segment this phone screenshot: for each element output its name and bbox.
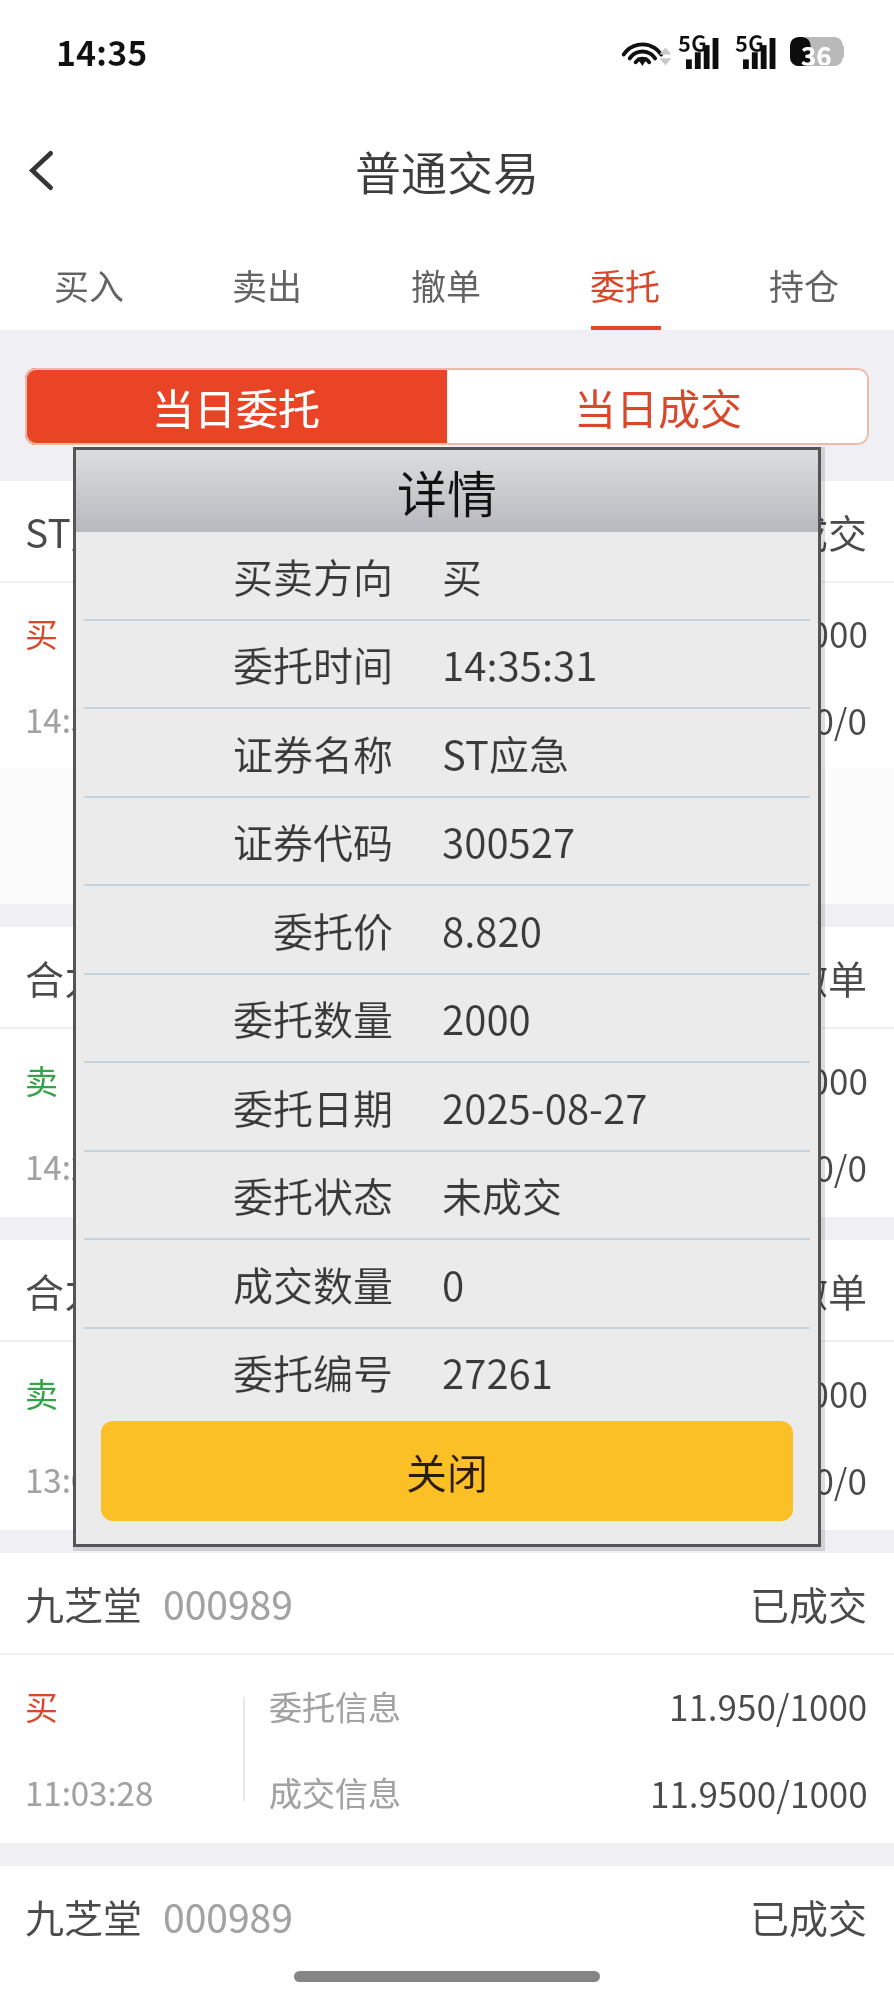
staticText: 撤单 — [411, 259, 482, 310]
staticText: 5G — [678, 26, 707, 58]
button[interactable]: 合力泰 — [0, 1240, 894, 1530]
button[interactable]: 九芝堂 — [0, 1866, 894, 2000]
staticText: 委托信息 — [269, 1369, 401, 1417]
staticText: 卖出 — [232, 259, 303, 310]
staticText: 委托数量 — [233, 989, 393, 1047]
button[interactable]: 撤单 — [357, 232, 536, 330]
staticText: 0.0000/0 — [727, 1141, 868, 1192]
staticText: 委托 — [590, 259, 661, 310]
staticText: 已成交 — [750, 1888, 868, 1944]
staticText: 成交信息 — [269, 695, 401, 743]
button[interactable]: 关闭 — [101, 1421, 793, 1521]
staticText: 已成交 — [750, 1575, 868, 1631]
staticText: 0.0000/0 — [727, 1454, 868, 1505]
staticText: 未成交 — [750, 503, 868, 559]
button[interactable]: 卖出 — [178, 232, 357, 330]
staticText: 卖 — [25, 1369, 58, 1417]
staticText: 成交信息 — [269, 1768, 401, 1816]
staticText: 14:35 — [56, 27, 148, 76]
staticText: 2.650/1000 — [689, 1367, 868, 1418]
staticText: 2000 — [442, 989, 531, 1047]
staticText: 14:35:31 — [25, 695, 154, 743]
staticText: 委托信息 — [269, 1056, 401, 1104]
staticText: 14:20:10 — [25, 1142, 154, 1190]
button[interactable]: ST应急 — [0, 481, 894, 904]
button[interactable]: Back — [0, 129, 82, 211]
staticText: 详情 — [397, 455, 497, 527]
staticText: 13:05:44 — [25, 1455, 154, 1503]
staticText: 0.0000/0 — [727, 694, 868, 745]
staticText: 委托状态 — [233, 1166, 393, 1224]
staticText: 300527 — [442, 812, 576, 870]
staticText: 普通交易 — [355, 137, 539, 204]
staticText: 委托信息 — [269, 1682, 401, 1730]
staticText: 14:35:31 — [442, 635, 598, 693]
staticText: 九芝堂 — [25, 1888, 143, 1944]
staticText: 2.630/1000 — [689, 1054, 868, 1105]
staticText: ST应急 — [25, 503, 149, 559]
staticText: 2025-08-27 — [442, 1078, 648, 1136]
staticText: 002217 — [163, 1262, 293, 1318]
staticText: 0 — [442, 1255, 465, 1313]
staticText: 委托价 — [273, 901, 393, 959]
staticText: 证券代码 — [233, 812, 393, 870]
staticText: 当日成交 — [574, 376, 743, 437]
staticText: 已撤单 — [750, 1262, 868, 1318]
button[interactable]: 九芝堂 — [0, 1553, 894, 1843]
staticText: 8.820/2000 — [689, 607, 868, 658]
staticText: 36 — [801, 36, 832, 65]
staticText: 11:03:28 — [25, 1768, 154, 1816]
staticText: 卖 — [25, 1056, 58, 1104]
button[interactable]: 买入 — [0, 232, 178, 330]
staticText: 委托时间 — [233, 635, 393, 693]
staticText: 买 — [25, 1682, 58, 1730]
staticText: 委托日期 — [233, 1078, 393, 1136]
staticText: 证券名称 — [233, 724, 393, 782]
staticText: 九芝堂 — [25, 1575, 143, 1631]
staticText: 成交信息 — [269, 1142, 401, 1190]
staticText: 5G — [735, 26, 764, 58]
staticText: 关闭 — [406, 1441, 488, 1500]
staticText: 000989 — [163, 1888, 293, 1944]
button[interactable]: 当日成交 — [447, 368, 869, 445]
button[interactable]: 持仓 — [715, 232, 894, 330]
staticText: 成交数量 — [233, 1255, 393, 1313]
staticText: 合力泰 — [25, 949, 143, 1005]
button[interactable]: 委托 — [536, 232, 715, 330]
staticText: 8.820 — [442, 901, 542, 959]
staticText: 买卖方向 — [233, 547, 393, 605]
staticText: 11.9500/1000 — [650, 1767, 868, 1818]
staticText: 买入 — [54, 259, 125, 310]
staticText: 300527 — [169, 503, 299, 559]
button[interactable]: 合力泰 — [0, 927, 894, 1217]
staticText: ST应急 — [442, 724, 569, 782]
staticText: 000989 — [163, 1575, 293, 1631]
staticText: 002217 — [163, 949, 293, 1005]
staticText: 持仓 — [769, 259, 840, 310]
staticText: 合力泰 — [25, 1262, 143, 1318]
staticText: 11.950/1000 — [669, 1680, 868, 1731]
staticText: 买 — [442, 547, 482, 605]
staticText: 委托编号 — [233, 1343, 393, 1401]
staticText: 委托信息 — [269, 609, 401, 657]
staticText: 当日委托 — [152, 376, 321, 437]
staticText: 27261 — [442, 1343, 553, 1401]
button[interactable]: 当日委托 — [25, 368, 447, 445]
staticText: 买 — [25, 609, 58, 657]
staticText: 已撤单 — [750, 949, 868, 1005]
staticText: 未成交 — [442, 1166, 562, 1224]
